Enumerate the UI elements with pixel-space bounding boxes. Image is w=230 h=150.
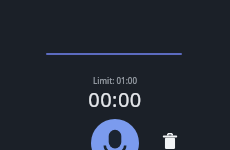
button[interactable]: Delete (157, 128, 183, 150)
staticText: 00:00 (0, 86, 230, 113)
staticText: Limit: 01:00 (0, 75, 230, 86)
button[interactable]: Record (91, 119, 139, 150)
